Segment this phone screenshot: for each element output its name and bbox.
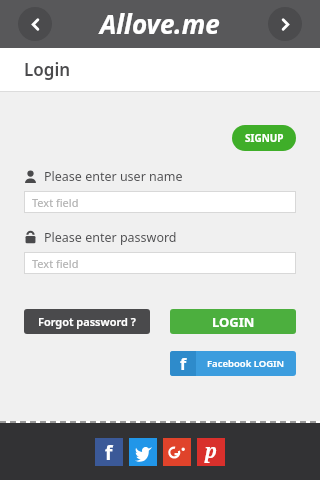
staticText: Please enter password bbox=[44, 229, 177, 246]
staticText: f bbox=[105, 440, 113, 466]
staticText: Facebook LOGIN bbox=[207, 357, 285, 370]
staticText: f bbox=[180, 353, 187, 375]
staticText: Text field bbox=[32, 195, 79, 210]
button[interactable]: Twitter bbox=[129, 438, 157, 466]
staticText: Text field bbox=[32, 256, 79, 271]
staticText: p bbox=[205, 438, 217, 464]
staticText: Please enter user name bbox=[44, 168, 183, 185]
staticText: LOGIN bbox=[212, 313, 255, 331]
button[interactable]: SIGNUP bbox=[232, 125, 296, 151]
staticText: Forgot password ? bbox=[38, 314, 136, 329]
button[interactable]: Text field bbox=[24, 252, 296, 274]
button[interactable]: Pinterest bbox=[197, 438, 225, 466]
button[interactable]: Back bbox=[18, 7, 52, 41]
button[interactable]: Text field bbox=[24, 191, 296, 213]
staticText: SIGNUP bbox=[245, 131, 284, 145]
button[interactable]: Facebook bbox=[95, 438, 123, 466]
button[interactable]: f bbox=[170, 351, 296, 376]
button[interactable]: Forgot password ? bbox=[24, 309, 150, 334]
button[interactable]: LOGIN bbox=[170, 309, 296, 334]
button[interactable]: Google Plus bbox=[163, 438, 191, 466]
staticText: Allove.me bbox=[100, 6, 220, 41]
button[interactable]: Forward bbox=[268, 7, 302, 41]
staticText: Login bbox=[24, 58, 71, 81]
